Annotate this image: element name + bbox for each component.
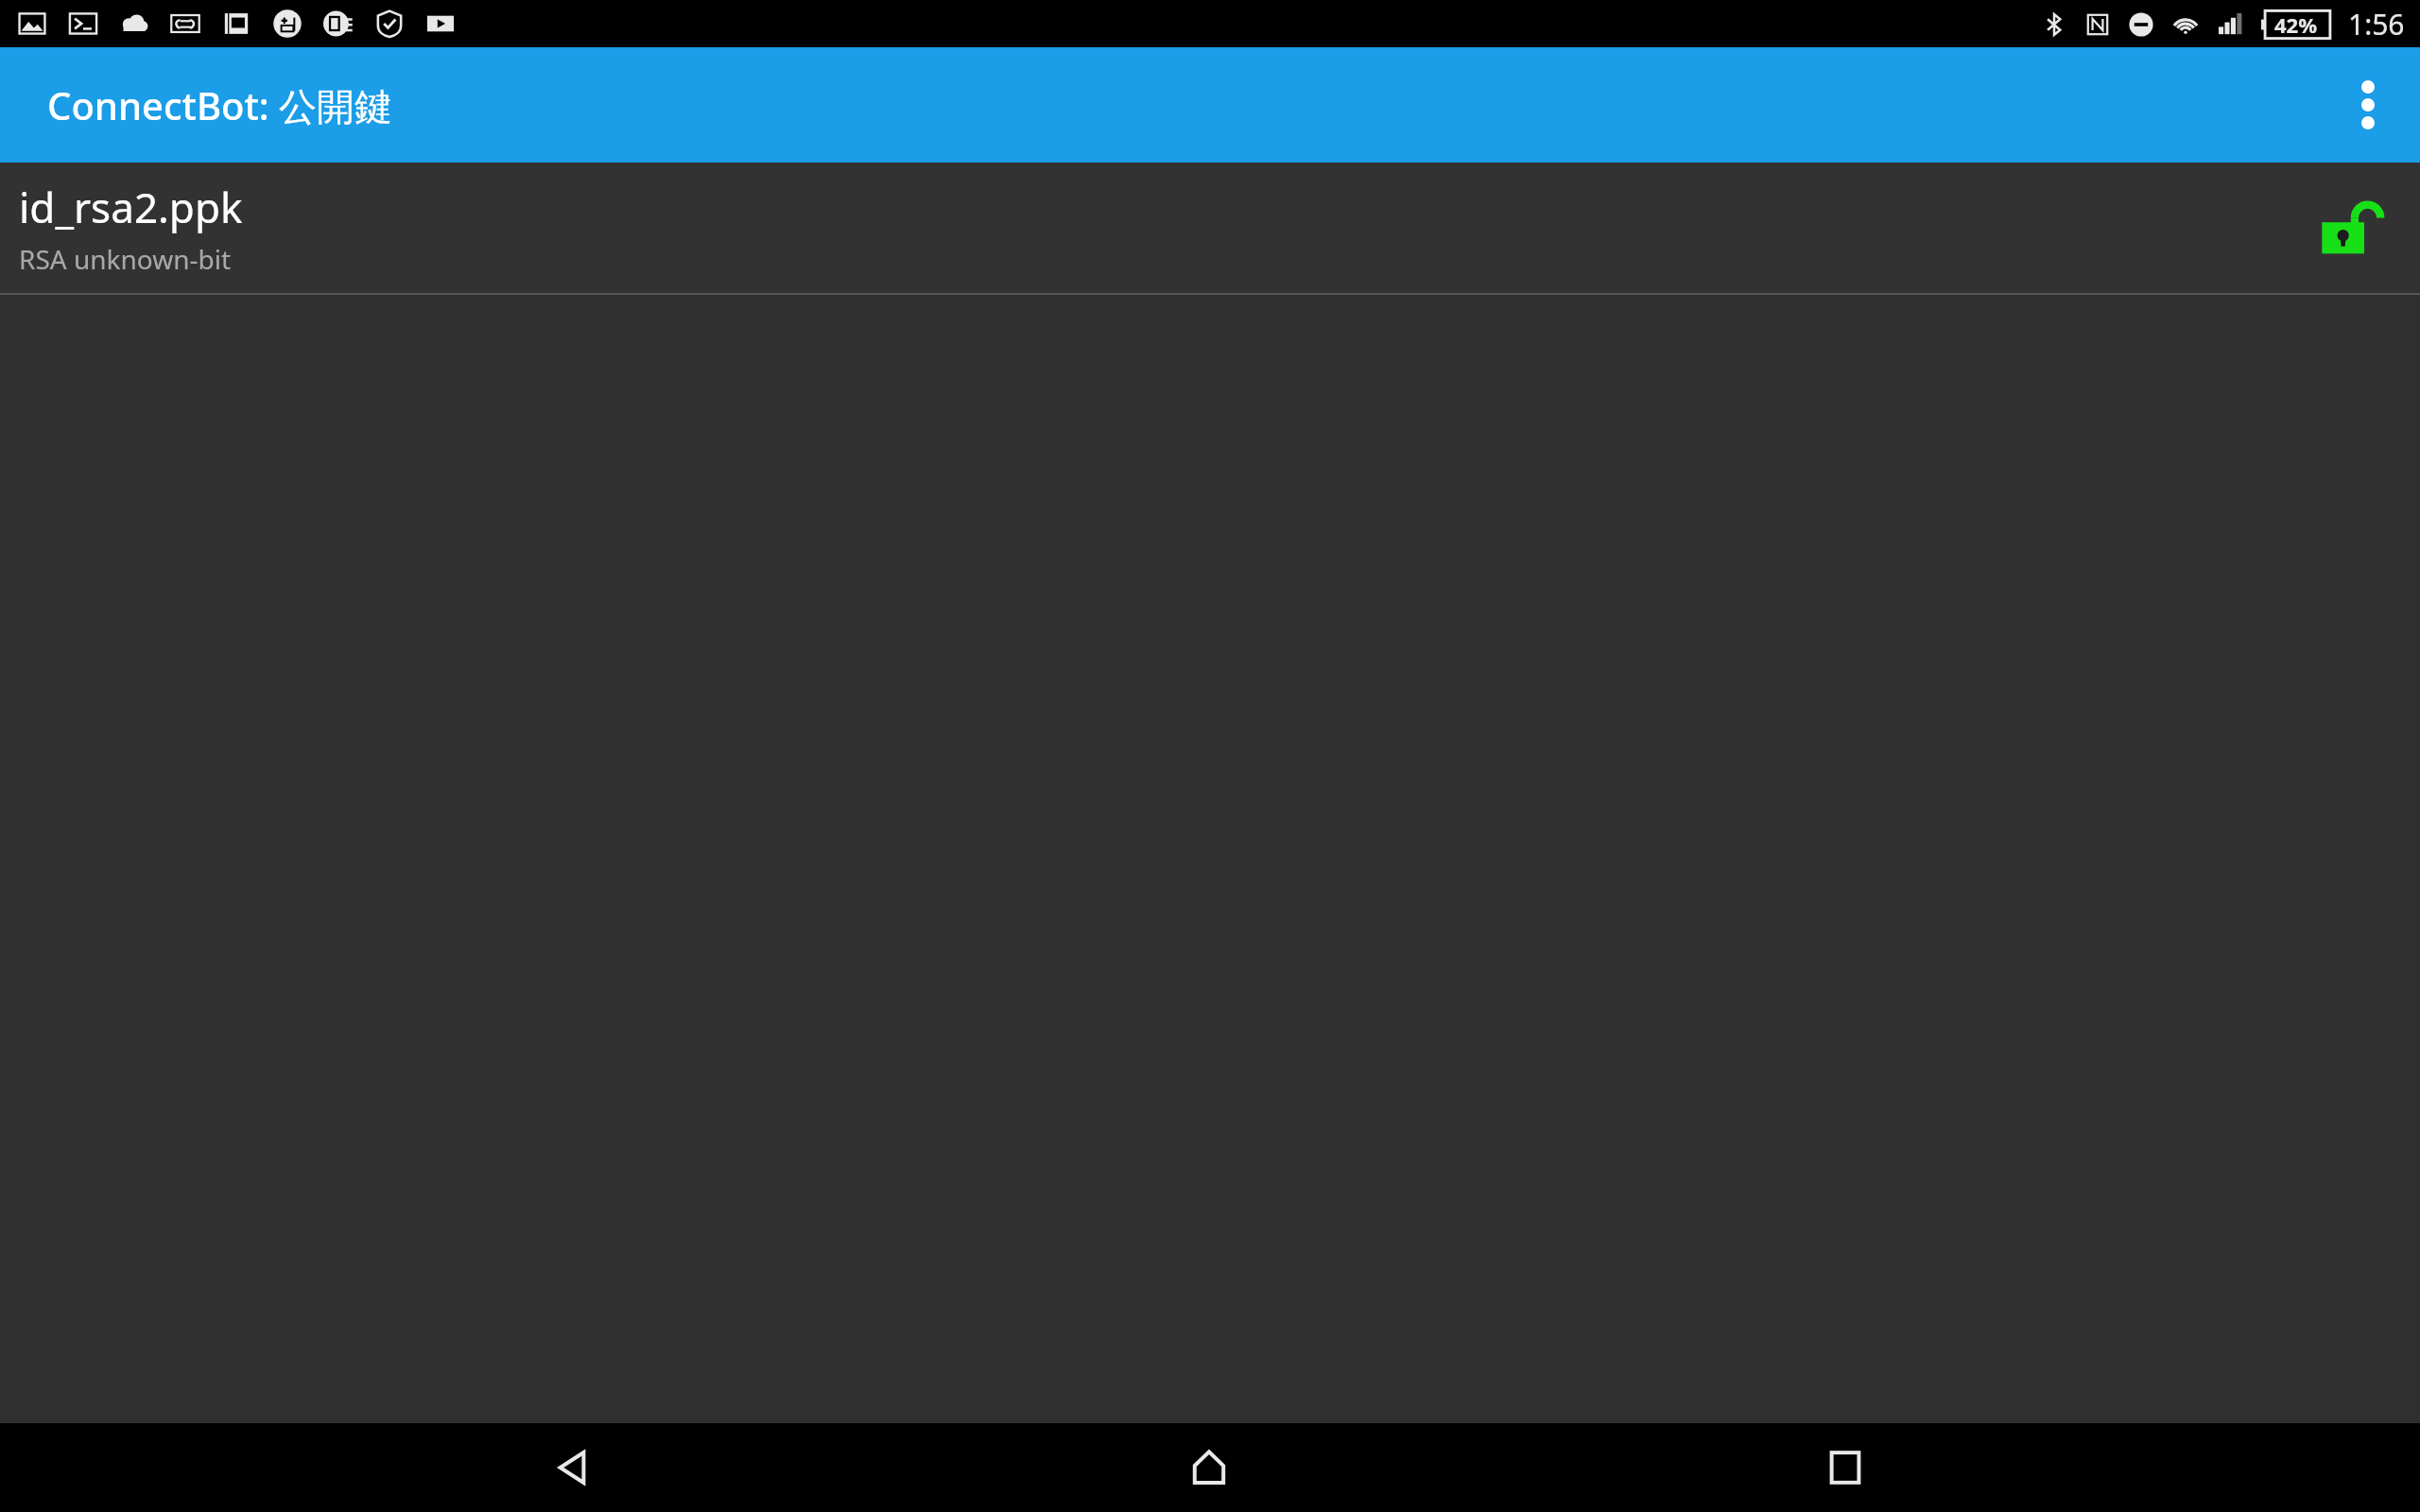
button[interactable]: Recent apps xyxy=(1784,1423,1907,1512)
staticText: RSA unknown-bit xyxy=(19,241,232,277)
staticText: 42% xyxy=(2274,10,2318,39)
button[interactable]: Back xyxy=(512,1423,635,1512)
staticText: id_rsa2.ppk xyxy=(19,179,243,235)
button[interactable]: More options xyxy=(2316,47,2420,163)
button[interactable]: Home xyxy=(1148,1423,1270,1512)
button[interactable]: Key unlocked xyxy=(2318,194,2386,262)
staticText: ConnectBot: 公開鍵 xyxy=(47,79,393,131)
staticText: 1:56 xyxy=(2348,5,2405,43)
button[interactable]: id_rsa2.ppk xyxy=(0,163,2420,293)
